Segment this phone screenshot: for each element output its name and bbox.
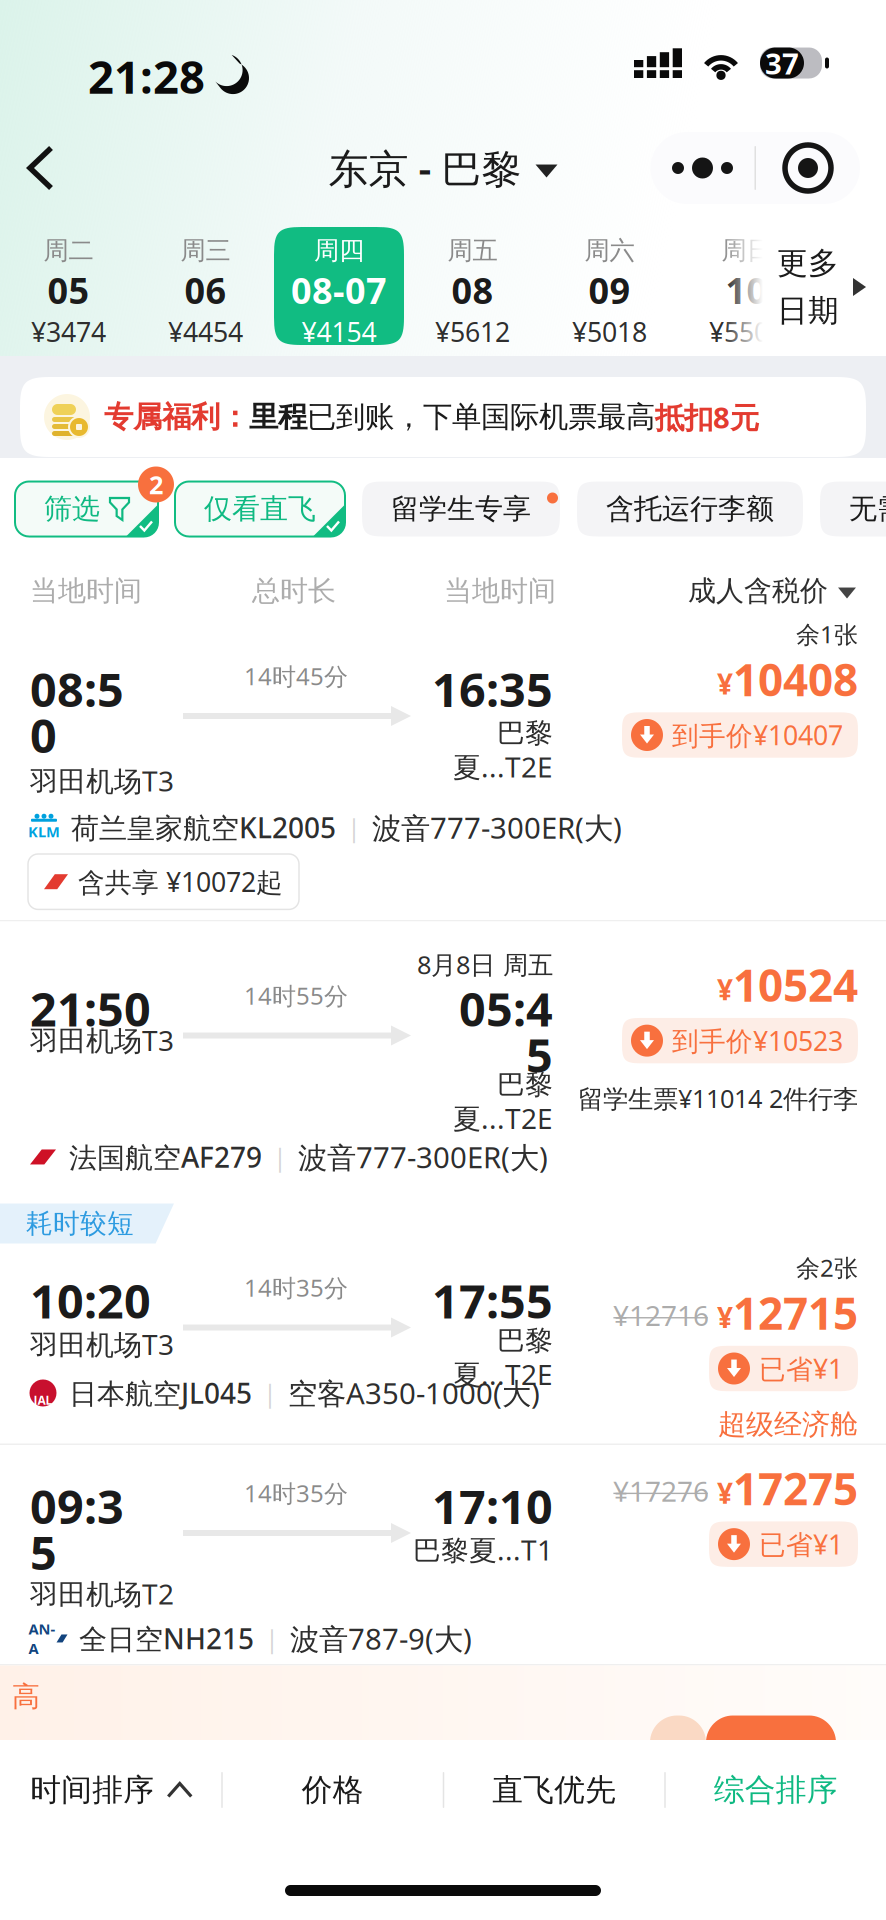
staticText: 17275 (733, 1459, 858, 1517)
button[interactable]: 时间排序 (0, 1740, 221, 1840)
staticText: 5 (30, 1521, 57, 1583)
staticText: 10408 (733, 650, 858, 708)
staticText: 09 (588, 266, 630, 314)
button[interactable]: 专属福利： (20, 377, 866, 457)
staticText: ¥5500 (709, 314, 784, 349)
staticText: 羽田机场T3 (30, 1325, 174, 1363)
button[interactable]: 周五 (404, 227, 541, 345)
button[interactable]: More (650, 132, 754, 204)
staticText: 0 (30, 704, 57, 766)
staticText: 仅看直飞 (204, 492, 316, 526)
staticText: | (265, 1622, 279, 1655)
staticText: 周四 (314, 235, 364, 266)
staticText: 成人含税价 (688, 574, 828, 608)
staticText: 巴黎 (497, 716, 553, 750)
staticText: 波音777-300ER(大) (298, 1137, 548, 1176)
button[interactable]: 周六 (541, 227, 678, 345)
staticText: 筛选 (44, 492, 100, 526)
staticText: 周三 (180, 235, 230, 266)
staticText: 更多 (777, 244, 839, 282)
button[interactable]: 综合排序 (666, 1740, 886, 1840)
staticText: 东京 - 巴黎 (328, 141, 521, 194)
staticText: 10524 (733, 955, 858, 1014)
staticText: 总时长 (252, 574, 336, 608)
staticText: 当地时间 (30, 574, 142, 608)
button[interactable]: 周四 (274, 227, 404, 345)
staticText: 当地时间 (444, 574, 556, 608)
staticText: 周日 (721, 235, 771, 266)
staticText: 全日空NH215 (79, 1620, 254, 1657)
staticText: 5 (526, 1023, 553, 1085)
staticText: | (273, 1140, 287, 1174)
staticText: 里程 (249, 399, 307, 435)
staticText: 14时35分 (244, 1477, 348, 1509)
button[interactable]: Back (0, 120, 81, 216)
staticText: 14时35分 (244, 1271, 348, 1303)
button[interactable]: Close (756, 132, 860, 204)
staticText: 直飞优先 (492, 1771, 616, 1809)
staticText: 羽田机场T3 (30, 762, 174, 799)
staticText: 08-07 (291, 266, 387, 314)
staticText: 留学生票¥11014 2件行李 (578, 1081, 858, 1115)
staticText: ¥17276 (613, 1472, 709, 1509)
staticText: 08:5 (30, 658, 124, 720)
staticText: 已到账， (307, 399, 423, 435)
button[interactable]: 周三 (137, 227, 274, 345)
button[interactable]: 东京 - 巴黎 (318, 123, 567, 212)
staticText: 荷兰皇家航空KL2005 (71, 809, 336, 846)
staticText: 耗时较短 (26, 1207, 134, 1240)
staticText: 已省¥1 (759, 1351, 843, 1386)
staticText: 周六 (584, 235, 634, 266)
staticText: 周二 (43, 235, 93, 266)
button[interactable]: 筛选 (15, 481, 158, 536)
button[interactable]: 价格 (223, 1740, 443, 1840)
staticText: ANA (28, 1619, 55, 1658)
staticText: ¥4454 (168, 314, 243, 349)
staticText: ¥3474 (31, 314, 106, 349)
staticText: ¥ (717, 971, 733, 1008)
button[interactable]: 周日 (678, 227, 815, 345)
staticText: 法国航空AF279 (69, 1138, 262, 1176)
staticText: 日本航空JL045 (69, 1374, 252, 1412)
staticText: 高 (12, 1679, 40, 1714)
staticText: 余1张 (796, 618, 858, 650)
staticText: ¥ (717, 1474, 733, 1511)
staticText: 夏...T2E (453, 748, 553, 785)
staticText: ¥4154 (301, 314, 376, 349)
button[interactable]: 直飞优先 (444, 1740, 664, 1840)
staticText: 06 (184, 266, 226, 314)
staticText: JAL (33, 1392, 52, 1408)
staticText: 日期 (777, 292, 839, 330)
staticText: 超级经济舱 (718, 1407, 858, 1442)
staticText: 17:55 (432, 1269, 553, 1331)
staticText: 羽田机场T3 (30, 1021, 174, 1059)
staticText: 10 (725, 266, 767, 314)
staticText: 21:28 (88, 46, 205, 106)
button[interactable]: 无需过境签 (820, 481, 886, 536)
button[interactable]: 仅看直飞 (175, 481, 345, 536)
staticText: 价格 (302, 1771, 364, 1809)
button[interactable]: 留学生专享 (362, 481, 560, 536)
staticText: KLM (28, 822, 60, 841)
button[interactable]: 10:20 (0, 1245, 886, 1443)
button[interactable]: 含托运行李额 (577, 481, 803, 536)
staticText: 14时55分 (244, 979, 348, 1011)
staticText: 到手价¥10523 (672, 1023, 843, 1058)
staticText: 05:4 (459, 977, 553, 1039)
button[interactable]: 更多 (763, 218, 886, 356)
button[interactable]: 周二 (0, 227, 137, 345)
staticText: 16:35 (432, 658, 553, 720)
staticText: ¥5612 (435, 314, 510, 349)
button[interactable]: 08:5 (0, 622, 886, 920)
button[interactable]: 09:3 (0, 1445, 886, 1664)
staticText: 空客A350-1000(大) (288, 1373, 540, 1412)
staticText: 含托运行李额 (606, 492, 774, 526)
staticText: ¥5018 (572, 314, 647, 349)
staticText: 已省¥1 (759, 1526, 843, 1562)
button[interactable]: 成人含税价 (688, 562, 886, 620)
staticText: 羽田机场T2 (30, 1575, 174, 1612)
button[interactable]: 21:50 (0, 921, 886, 1199)
staticText: 余2张 (796, 1251, 858, 1283)
staticText: ¥ (717, 665, 733, 702)
staticText: 无需过境签 (849, 492, 886, 526)
